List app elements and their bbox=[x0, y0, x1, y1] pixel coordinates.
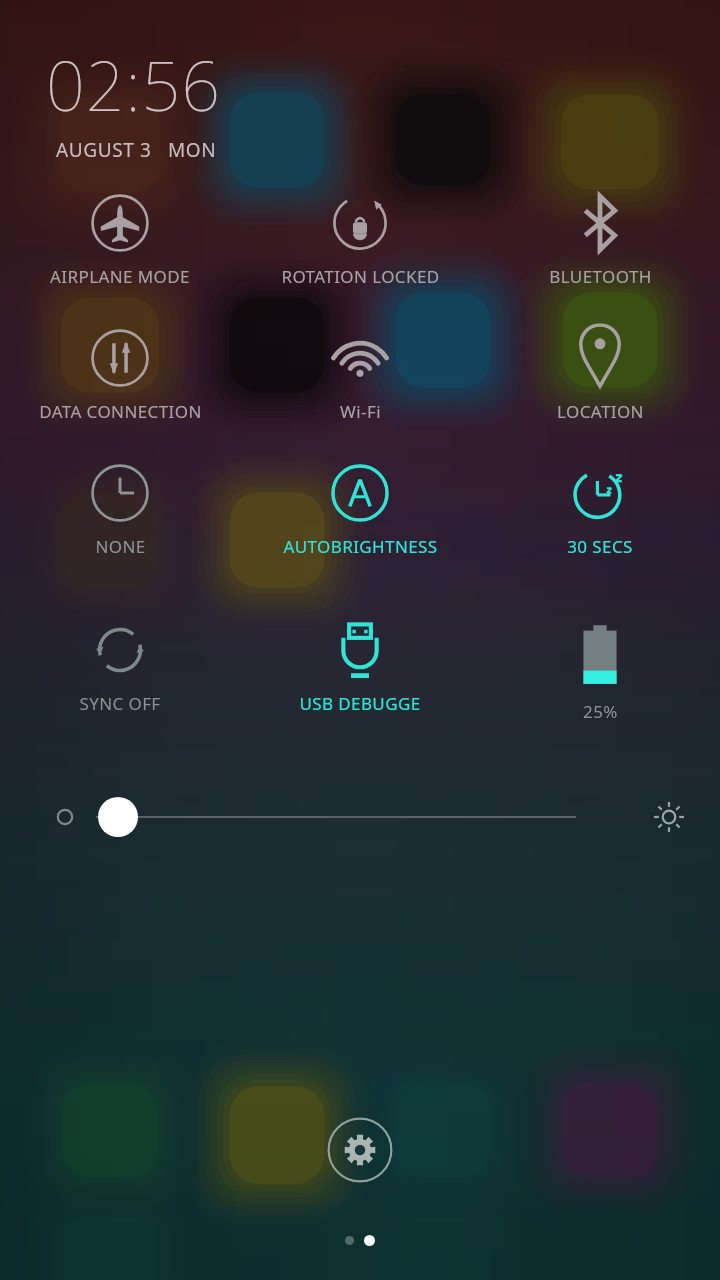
staticText: 02:56 bbox=[46, 38, 222, 131]
button[interactable]: ROTATION LOCKED bbox=[240, 187, 480, 292]
button[interactable]: 30 SECS bbox=[480, 457, 720, 562]
button[interactable]: 25% bbox=[480, 614, 720, 727]
button[interactable]: NONE bbox=[0, 457, 240, 562]
button[interactable]: USB DEBUGGE bbox=[240, 614, 480, 719]
staticText: LOCATION bbox=[557, 400, 644, 423]
staticText: NONE bbox=[95, 535, 146, 558]
staticText: 25% bbox=[583, 700, 618, 723]
button[interactable]: SYNC OFF bbox=[0, 614, 240, 719]
staticText: AUTOBRIGHTNESS bbox=[283, 535, 438, 558]
button[interactable]: LOCATION bbox=[480, 322, 720, 427]
button[interactable]: AUTOBRIGHTNESS bbox=[240, 457, 480, 562]
staticText: 30 SECS bbox=[567, 535, 633, 558]
staticText: Wi-Fi bbox=[340, 400, 381, 423]
staticText: AUGUST 3 MON bbox=[56, 137, 217, 163]
button[interactable]: Settings bbox=[327, 1117, 393, 1183]
button[interactable]: DATA CONNECTION bbox=[0, 322, 240, 427]
staticText: SYNC OFF bbox=[79, 692, 161, 715]
staticText: BLUETOOTH bbox=[549, 265, 652, 288]
staticText: USB DEBUGGE bbox=[299, 692, 421, 715]
button[interactable]: Auto brightness bbox=[652, 800, 686, 834]
button[interactable]: AIRPLANE MODE bbox=[0, 187, 240, 292]
button[interactable]: Wi-Fi bbox=[240, 322, 480, 427]
button[interactable]: BLUETOOTH bbox=[480, 187, 720, 292]
staticText: DATA CONNECTION bbox=[39, 400, 202, 423]
staticText: AIRPLANE MODE bbox=[50, 265, 190, 288]
staticText: ROTATION LOCKED bbox=[281, 265, 440, 288]
button[interactable]: Brightness bbox=[0, 785, 720, 849]
